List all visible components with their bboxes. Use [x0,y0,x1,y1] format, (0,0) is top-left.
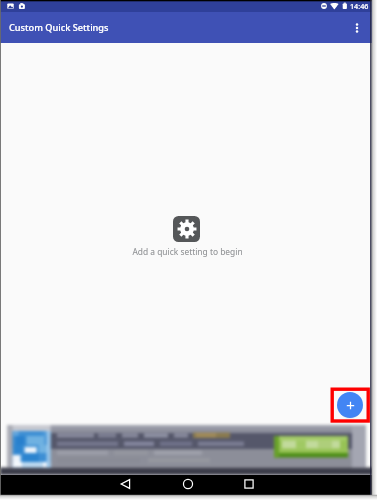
button[interactable]: Advertisement [0,425,377,475]
button[interactable]: More options [343,14,371,42]
button[interactable]: Home [175,474,201,494]
button[interactable]: Recents [236,474,262,494]
button[interactable]: Back [113,474,139,494]
staticText: 14:46 [350,1,369,11]
staticText: Add a quick setting to begin [132,246,243,257]
button[interactable]: Add quick setting [337,392,363,418]
staticText: Custom Quick Settings [9,21,109,34]
